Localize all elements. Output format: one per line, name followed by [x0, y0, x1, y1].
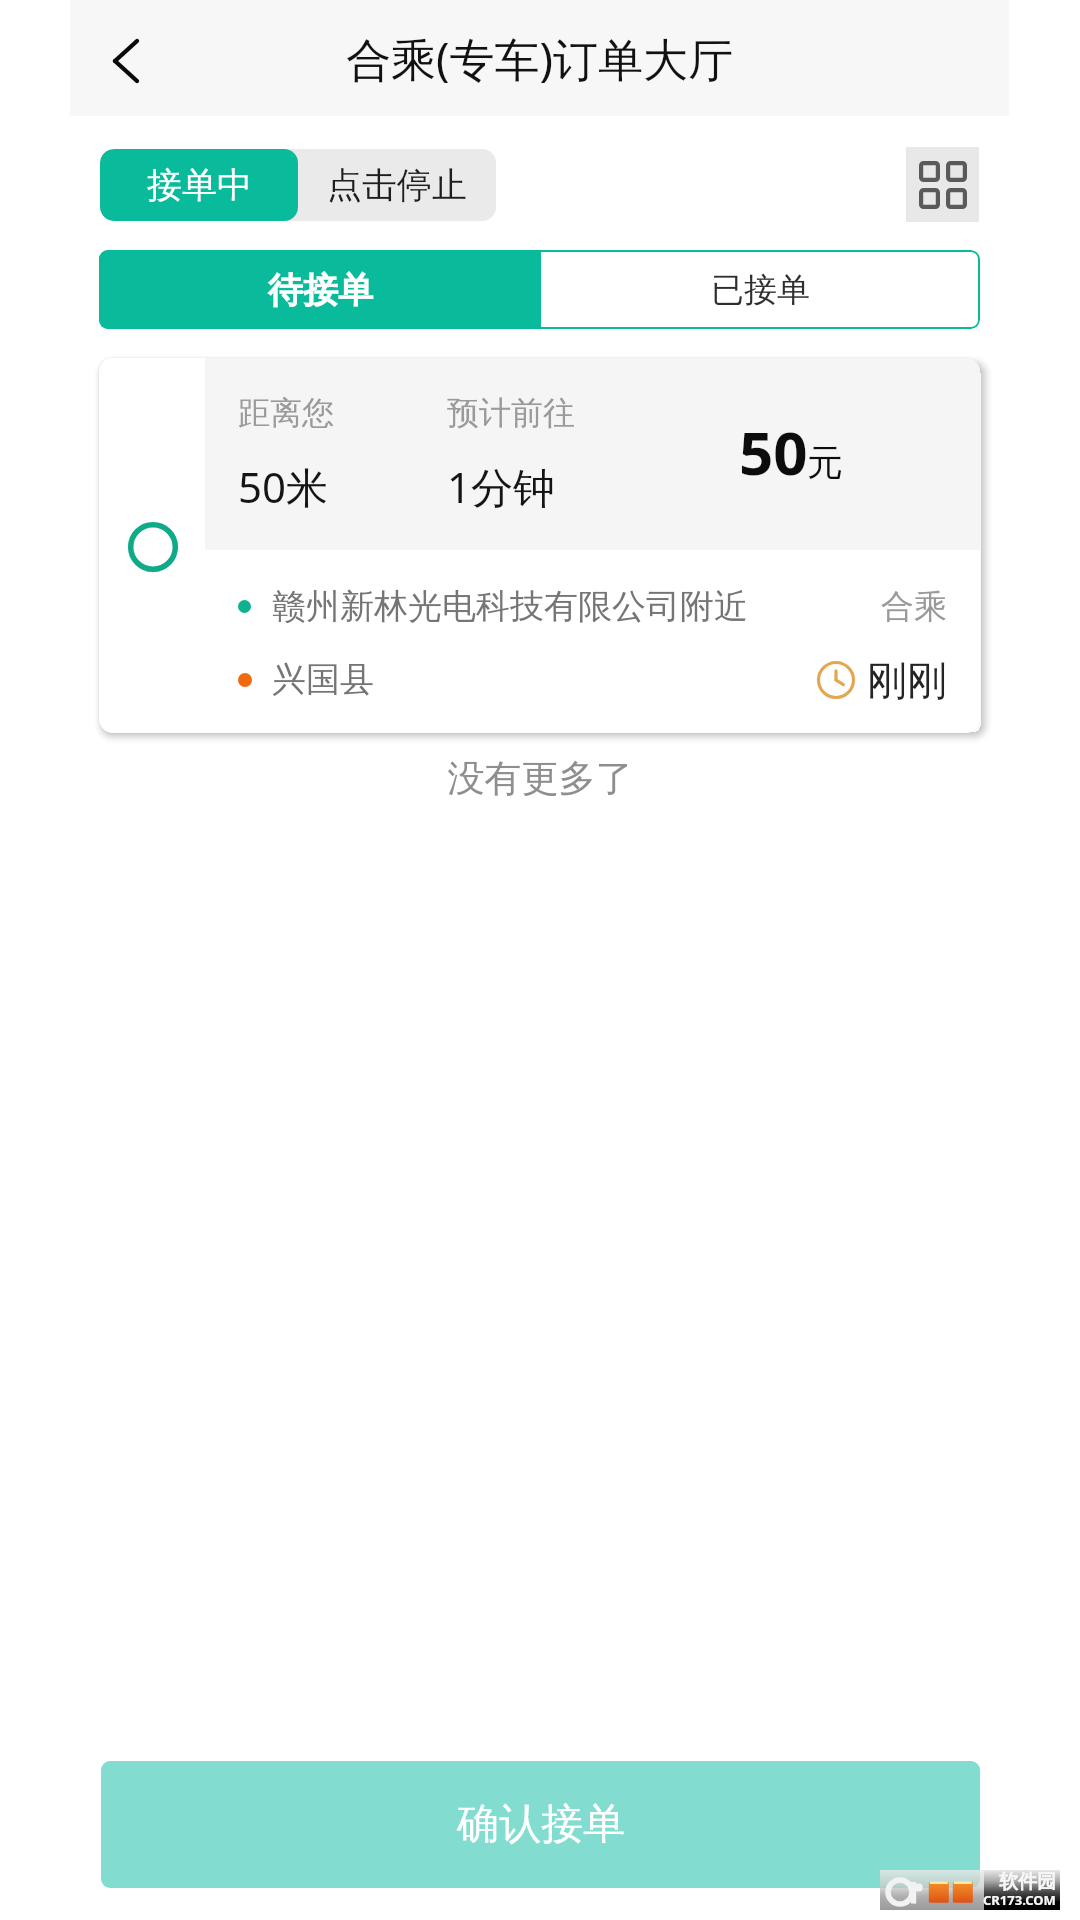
- button[interactable]: 接单中: [100, 149, 298, 221]
- button[interactable]: 确认接单: [101, 1761, 980, 1888]
- staticText: 50: [739, 411, 808, 493]
- staticText: 合乘(专车)订单大厅: [346, 28, 734, 89]
- staticText: 接单中: [147, 163, 252, 207]
- staticText: 确认接单: [457, 1798, 625, 1851]
- staticText: 刚刚: [867, 655, 947, 705]
- staticText: 预计前往: [447, 393, 575, 433]
- button[interactable]: 待接单: [99, 250, 541, 329]
- button[interactable]: Back: [70, 0, 180, 116]
- staticText: 赣州新林光电科技有限公司附近: [272, 585, 748, 628]
- staticText: 点击停止: [327, 163, 467, 207]
- staticText: 软件园: [999, 1870, 1056, 1894]
- staticText: 没有更多了: [0, 755, 1080, 802]
- staticText: 1分钟: [447, 458, 556, 515]
- button[interactable]: 已接单: [541, 250, 980, 329]
- staticText: 元: [807, 440, 843, 485]
- staticText: 距离您: [238, 393, 334, 433]
- staticText: 已接单: [711, 269, 810, 311]
- staticText: 兴国县: [272, 658, 374, 701]
- staticText: 合乘: [881, 586, 947, 628]
- button[interactable]: 点击停止: [298, 149, 496, 221]
- staticText: 50米: [238, 458, 329, 515]
- staticText: 待接单: [268, 268, 373, 312]
- button[interactable]: 距离您: [99, 358, 980, 733]
- button[interactable]: Grid view: [906, 147, 979, 222]
- staticText: CR173.COM: [983, 1891, 1056, 1909]
